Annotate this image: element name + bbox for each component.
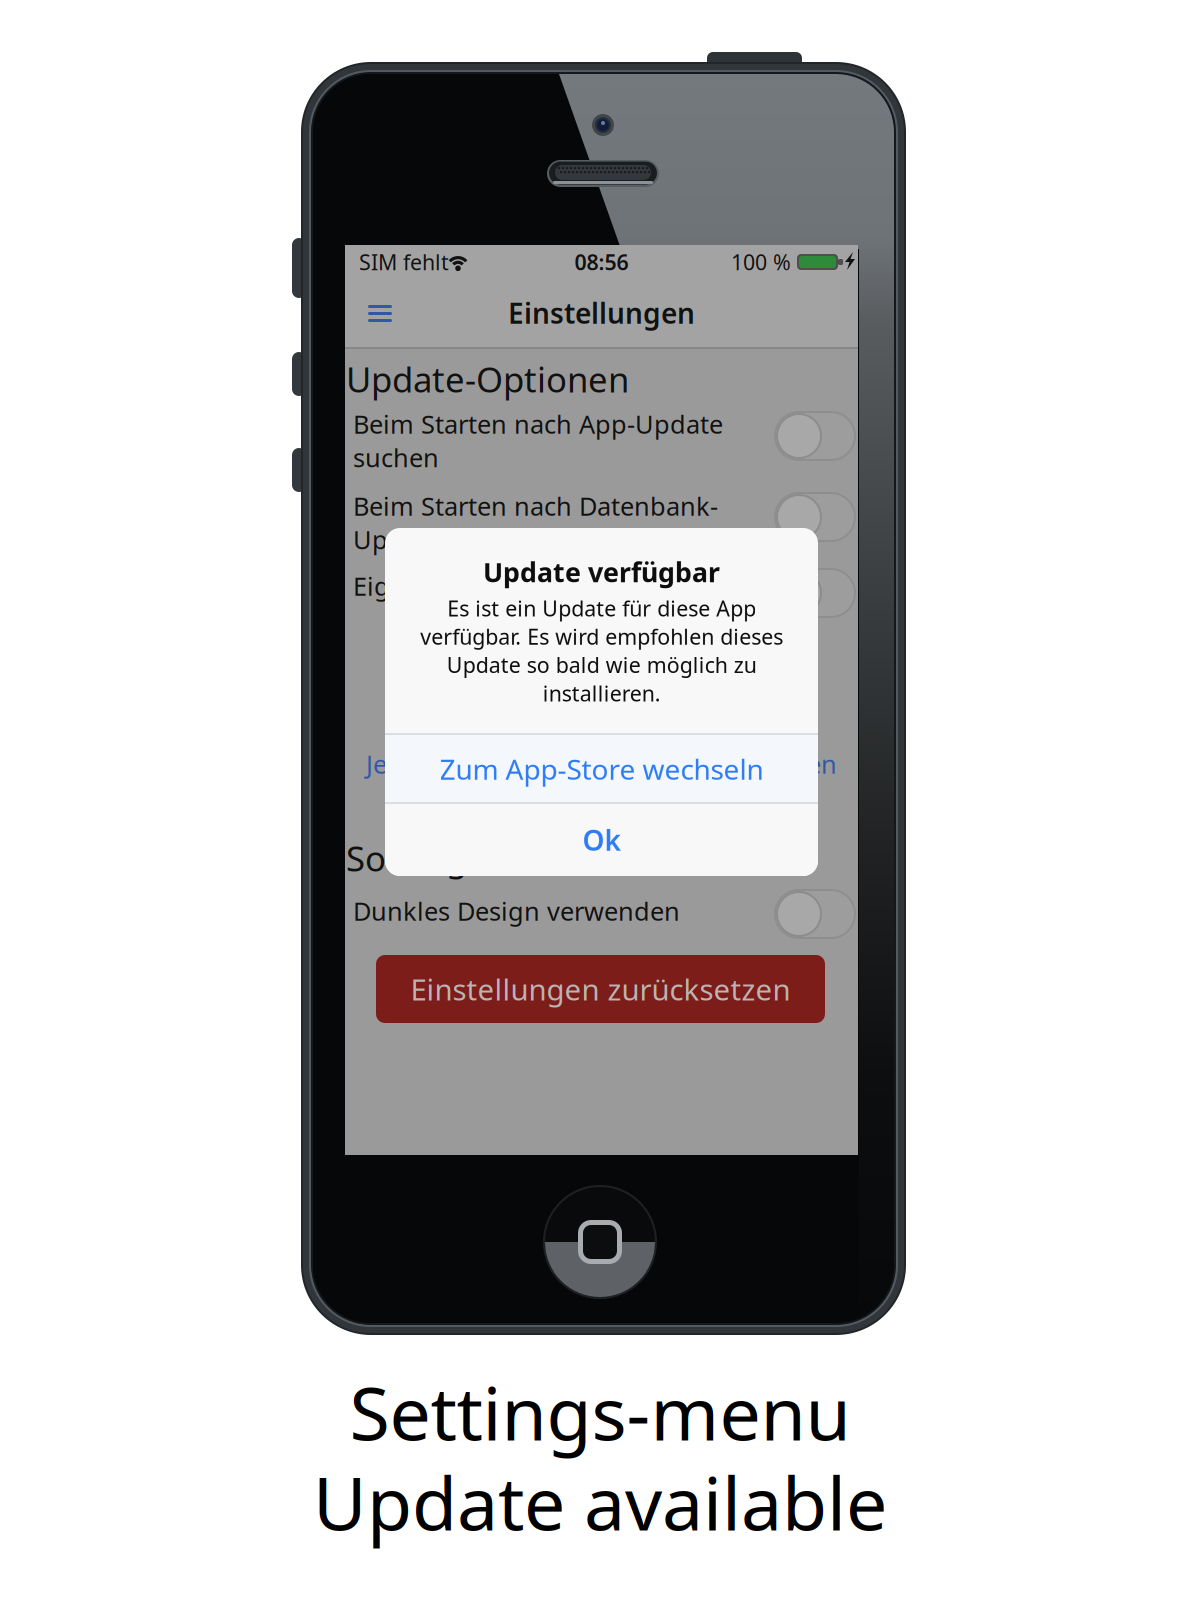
staticText: Einstellungen — [508, 294, 695, 332]
button[interactable]: Toggle — [345, 245, 425, 293]
staticText: Beim Starten nach App-Update suchen — [353, 407, 723, 474]
button[interactable]: Jetzt nach verfügbaren Updates suchen — [345, 245, 858, 277]
button[interactable]: Ok — [385, 528, 818, 600]
staticText: Update-Optionen — [346, 356, 629, 402]
staticText: 08:56 — [574, 248, 628, 276]
staticText: Beim Starten nach Datenbank-Update suche… — [353, 489, 718, 556]
button[interactable]: Toggle — [345, 245, 425, 293]
button[interactable]: Einstellungen zurücksetzen — [345, 245, 794, 313]
staticText: Einstellungen zurücksetzen — [410, 969, 790, 1008]
staticText: Es ist ein Update für diese App verfügba… — [420, 594, 783, 707]
staticText: SIM fehlt — [359, 248, 449, 276]
staticText: Dunkles Design verwenden — [353, 894, 680, 928]
button[interactable]: Toggle — [345, 245, 425, 293]
staticText: Update available — [313, 1453, 887, 1551]
button[interactable]: Menu — [345, 245, 399, 299]
staticText: Ok — [582, 821, 620, 859]
button[interactable]: Zum App-Store wechseln — [385, 528, 818, 596]
staticText: Zum App-Store wechseln — [439, 750, 763, 788]
staticText: Settings-menu — [349, 1363, 850, 1461]
staticText: Eigene Datenbank verwenden — [353, 569, 712, 603]
button[interactable]: Toggle — [345, 245, 425, 293]
staticText: Jetzt nach verfügbaren Updates suchen — [366, 747, 837, 781]
staticText: Update verfügbar — [483, 554, 720, 590]
staticText: Sonstiges — [346, 835, 504, 881]
staticText: 100 % — [731, 248, 791, 276]
